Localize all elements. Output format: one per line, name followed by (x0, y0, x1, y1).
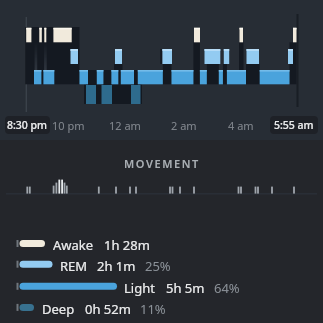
staticText: 64% (214, 279, 240, 297)
staticText: 2h 1m (97, 257, 136, 275)
staticText: 2 am (171, 118, 197, 133)
staticText: 1h 28m (104, 236, 150, 254)
staticText: MOVEMENT (124, 156, 200, 171)
staticText: 11% (140, 300, 166, 318)
staticText: 10 pm (52, 118, 85, 133)
button[interactable]: 5:55 am (270, 116, 318, 134)
staticText: 5h 5m (166, 279, 205, 297)
staticText: REM (60, 257, 88, 275)
staticText: Awake (53, 236, 94, 254)
staticText: 12 am (109, 118, 141, 133)
staticText: Deep (42, 300, 75, 318)
staticText: 5:55 am (274, 118, 314, 132)
staticText: 4 am (228, 118, 254, 133)
staticText: 8:30 pm (7, 118, 48, 132)
staticText: 25% (145, 257, 171, 275)
staticText: 0h 52m (85, 300, 131, 318)
staticText: Light (124, 279, 155, 297)
button[interactable]: 8:30 pm (5, 116, 50, 134)
